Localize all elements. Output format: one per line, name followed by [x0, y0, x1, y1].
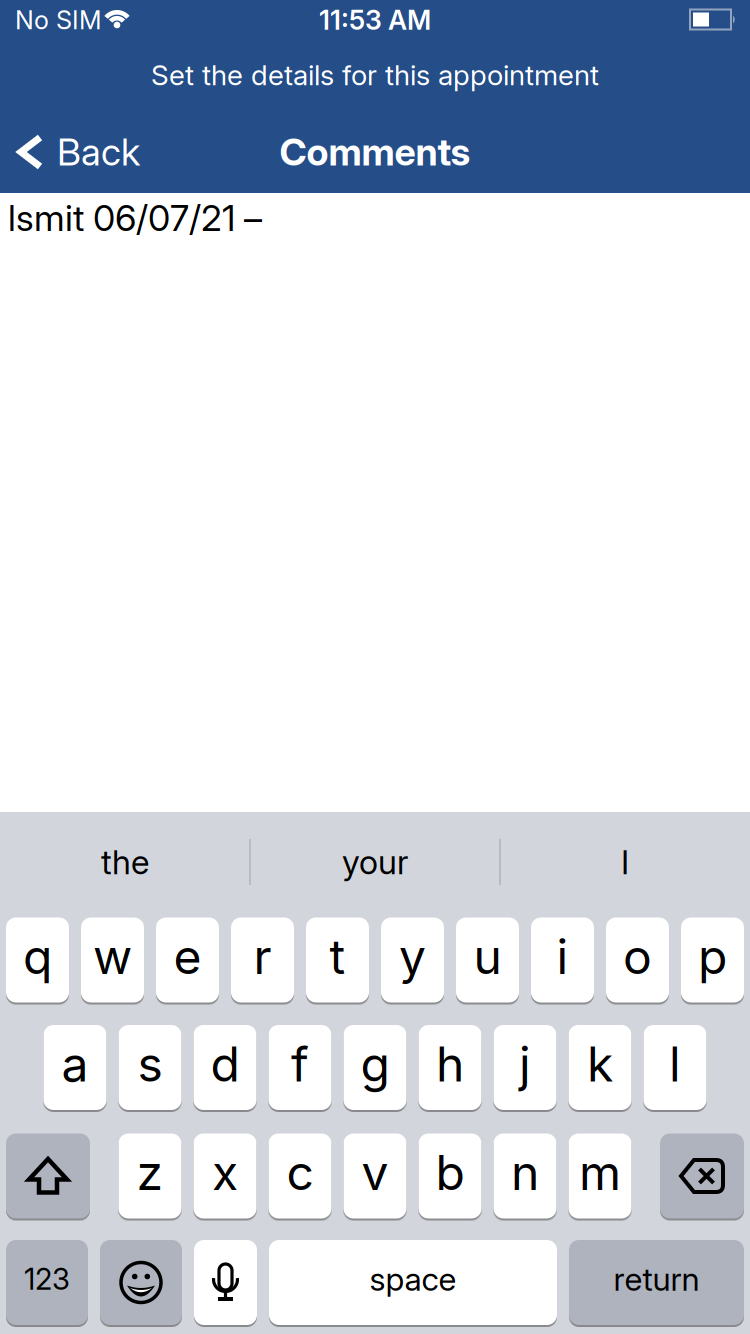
staticText: i: [556, 928, 568, 985]
staticText: 123: [24, 1262, 70, 1296]
staticText: o: [623, 928, 652, 985]
staticText: lsmit 06/07/21 –: [8, 197, 262, 239]
button[interactable]: v: [343, 1133, 406, 1218]
button[interactable]: m: [568, 1133, 631, 1218]
staticText: x: [212, 1144, 238, 1201]
button[interactable]: y: [381, 917, 444, 1002]
button[interactable]: f: [268, 1025, 331, 1110]
button[interactable]: d: [193, 1025, 256, 1110]
button[interactable]: j: [493, 1025, 556, 1110]
staticText: the: [101, 842, 149, 882]
staticText: space: [369, 1260, 456, 1298]
button[interactable]: c: [268, 1133, 331, 1218]
button[interactable]: Emoji: [100, 1240, 182, 1325]
button[interactable]: Dictate: [194, 1240, 257, 1325]
button[interactable]: 123: [6, 1240, 88, 1325]
button[interactable]: b: [418, 1133, 481, 1218]
staticText: e: [173, 928, 201, 985]
button[interactable]: space: [269, 1240, 557, 1325]
staticText: w: [93, 928, 132, 985]
button[interactable]: q: [6, 917, 69, 1002]
staticText: s: [137, 1036, 162, 1092]
button[interactable]: r: [231, 917, 294, 1002]
button[interactable]: x: [193, 1133, 256, 1218]
button[interactable]: Shift: [6, 1133, 90, 1218]
button[interactable]: w: [81, 917, 144, 1002]
staticText: n: [511, 1144, 539, 1201]
button[interactable]: s: [118, 1025, 181, 1110]
staticText: 11:53 AM: [319, 4, 431, 36]
button[interactable]: p: [681, 917, 744, 1002]
staticText: l: [669, 1036, 681, 1092]
button[interactable]: g: [343, 1025, 406, 1110]
staticText: v: [361, 1144, 388, 1201]
staticText: u: [473, 928, 501, 985]
staticText: a: [61, 1036, 88, 1092]
staticText: z: [136, 1144, 163, 1201]
button[interactable]: u: [456, 917, 519, 1002]
button[interactable]: Back: [16, 130, 140, 174]
staticText: j: [519, 1036, 531, 1092]
staticText: I: [621, 842, 629, 882]
staticText: p: [698, 928, 727, 985]
staticText: b: [435, 1144, 464, 1201]
button[interactable]: a: [43, 1025, 106, 1110]
staticText: g: [360, 1036, 389, 1092]
staticText: Back: [57, 130, 140, 174]
button[interactable]: your: [255, 817, 495, 907]
staticText: return: [613, 1260, 699, 1298]
button[interactable]: h: [418, 1025, 481, 1110]
button[interactable]: I: [505, 817, 745, 907]
staticText: d: [210, 1036, 239, 1092]
button[interactable]: e: [156, 917, 219, 1002]
staticText: Set the details for this appointment: [151, 58, 599, 91]
button[interactable]: the: [5, 817, 245, 907]
staticText: No SIM: [15, 5, 102, 35]
button[interactable]: return: [569, 1240, 744, 1325]
button[interactable]: z: [118, 1133, 181, 1218]
button[interactable]: l: [643, 1025, 706, 1110]
staticText: Comments: [279, 130, 470, 174]
staticText: q: [23, 928, 52, 985]
staticText: your: [342, 842, 408, 882]
button[interactable]: t: [306, 917, 369, 1002]
staticText: c: [286, 1144, 313, 1201]
button[interactable]: i: [531, 917, 594, 1002]
staticText: y: [399, 928, 426, 985]
staticText: h: [436, 1036, 464, 1092]
staticText: t: [329, 928, 345, 985]
button[interactable]: n: [493, 1133, 556, 1218]
staticText: m: [579, 1144, 621, 1201]
button[interactable]: Delete: [660, 1133, 744, 1218]
button[interactable]: k: [568, 1025, 631, 1110]
staticText: k: [587, 1036, 613, 1092]
staticText: f: [291, 1036, 309, 1092]
button[interactable]: o: [606, 917, 669, 1002]
staticText: r: [253, 928, 271, 985]
